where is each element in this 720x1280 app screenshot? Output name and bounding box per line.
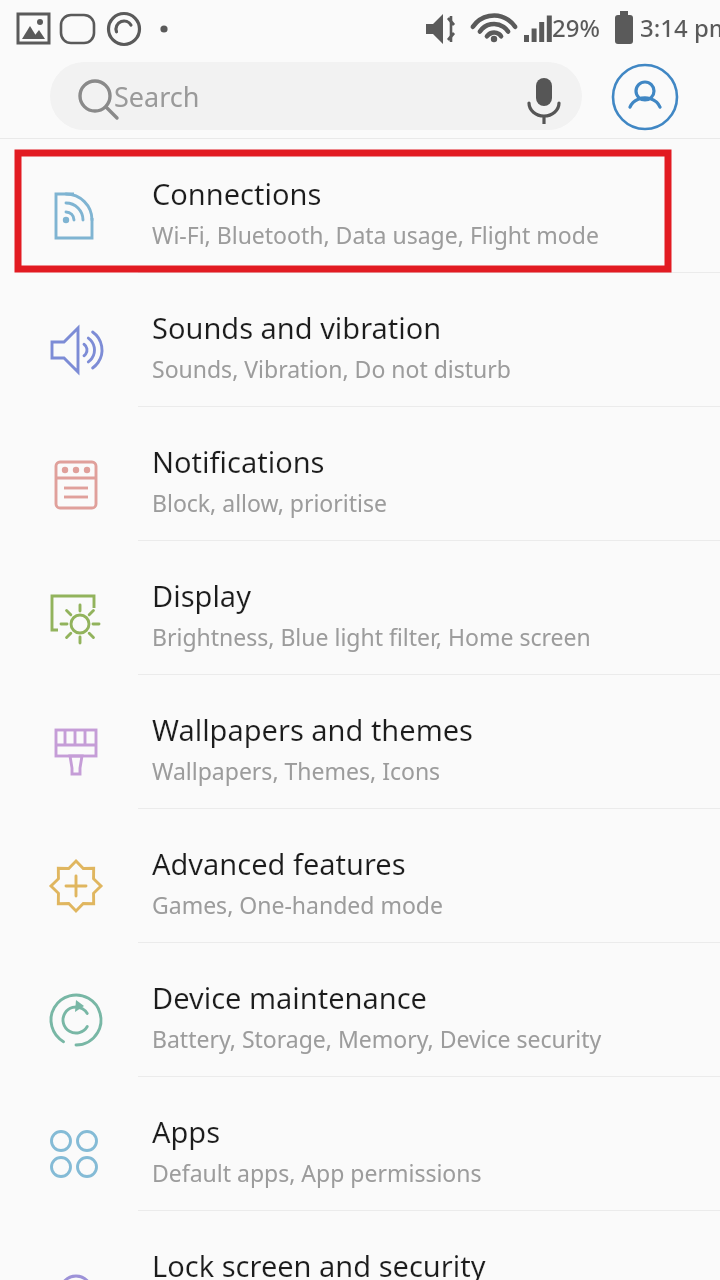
button[interactable]: Voice search	[512, 62, 580, 130]
staticText: Advanced features	[152, 844, 406, 883]
staticText: Brightness, Blue light filter, Home scre…	[152, 621, 591, 652]
button[interactable]: Search	[50, 62, 582, 130]
button[interactable]: Device maintenance	[0, 952, 720, 1086]
button[interactable]: Sounds and vibration	[0, 282, 720, 416]
button[interactable]: Wallpapers and themes	[0, 684, 720, 818]
staticText: Wallpapers and themes	[152, 710, 474, 749]
staticText: Battery, Storage, Memory, Device securit…	[152, 1023, 602, 1054]
staticText: Sounds, Vibration, Do not disturb	[152, 353, 511, 384]
button[interactable]: Advanced features	[0, 818, 720, 952]
staticText: Wi-Fi, Bluetooth, Data usage, Flight mod…	[152, 219, 599, 250]
button[interactable]: Apps	[0, 1086, 720, 1220]
button[interactable]: Account	[611, 63, 679, 131]
staticText: Default apps, App permissions	[152, 1157, 482, 1188]
button[interactable]: Notifications	[0, 416, 720, 550]
staticText: Connections	[152, 174, 322, 213]
staticText: Device maintenance	[152, 978, 427, 1017]
button[interactable]: Lock screen and security	[0, 1220, 720, 1280]
staticText: Wallpapers, Themes, Icons	[152, 755, 441, 786]
staticText: Block, allow, prioritise	[152, 487, 387, 518]
staticText: 29%	[552, 11, 600, 44]
staticText: Lock screen and security	[152, 1246, 486, 1280]
staticText: Apps	[152, 1112, 221, 1151]
staticText: Games, One-handed mode	[152, 889, 443, 920]
button[interactable]: Display	[0, 550, 720, 684]
staticText: Display	[152, 576, 251, 615]
staticText: Search	[114, 78, 200, 115]
button[interactable]: Connections	[0, 148, 720, 282]
staticText: Sounds and vibration	[152, 308, 442, 347]
staticText: Notifications	[152, 442, 325, 481]
staticText: 3:14 pm	[640, 11, 720, 44]
